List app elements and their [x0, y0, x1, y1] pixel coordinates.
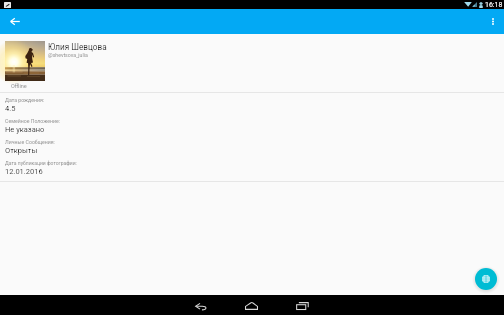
- button[interactable]: More options: [484, 13, 501, 30]
- staticText: Открыты: [5, 146, 38, 155]
- staticText: @shevtsova_julia: [48, 52, 88, 58]
- button[interactable]: Back: [181, 295, 221, 315]
- staticText: Дата публикации фотографии:: [5, 160, 77, 166]
- button[interactable]: Recent apps: [282, 295, 322, 315]
- staticText: 4.5: [5, 104, 16, 113]
- staticText: 16:18: [485, 1, 503, 9]
- staticText: Offline: [11, 83, 27, 89]
- staticText: Юлия Шевцова: [48, 42, 107, 52]
- button[interactable]: Back: [5, 12, 24, 31]
- button[interactable]: Дата рождения:: [0, 93, 504, 114]
- staticText: Не указано: [5, 125, 45, 134]
- staticText: Семейное Положение:: [5, 118, 60, 124]
- staticText: Личные Сообщения:: [5, 139, 55, 145]
- staticText: Дата рождения:: [5, 97, 45, 103]
- button[interactable]: Home: [231, 295, 271, 315]
- button[interactable]: Личные Сообщения:: [0, 135, 504, 156]
- button[interactable]: Семейное Положение:: [0, 114, 504, 135]
- button[interactable]: Дата публикации фотографии:: [0, 156, 504, 177]
- button[interactable]: Open in browser: [475, 268, 497, 290]
- staticText: 12.01.2016: [5, 167, 43, 176]
